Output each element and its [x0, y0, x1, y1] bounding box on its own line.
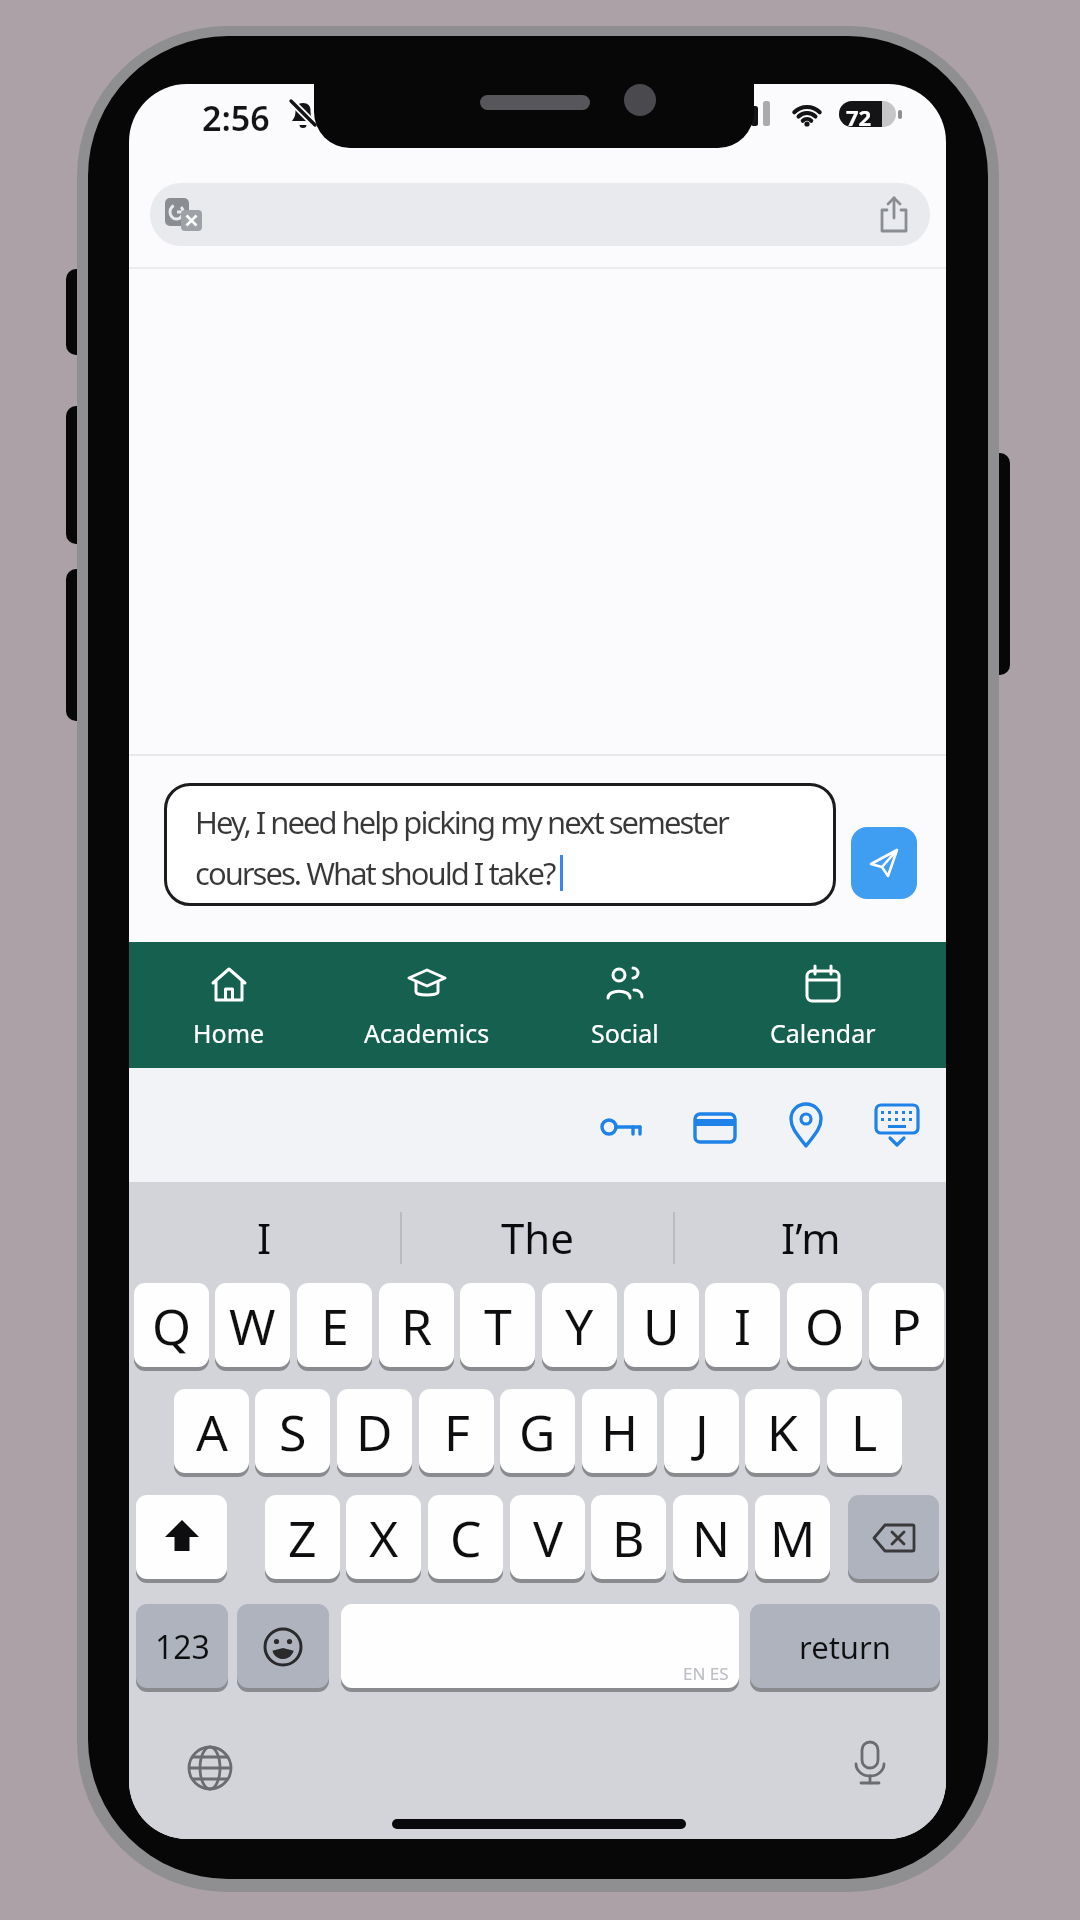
button[interactable]: Academics	[328, 942, 526, 1068]
button[interactable]: Z	[265, 1495, 340, 1580]
staticText: D	[356, 1398, 393, 1466]
button[interactable]: Hey, I need help picking my next semeste…	[164, 783, 836, 906]
button[interactable]: P	[869, 1283, 944, 1368]
staticText: Academics	[364, 1016, 490, 1050]
staticText: I’m	[781, 1209, 841, 1266]
button[interactable]: M	[755, 1495, 830, 1580]
button[interactable]	[787, 1102, 825, 1150]
staticText: L	[851, 1398, 878, 1466]
staticText: K	[767, 1398, 798, 1466]
button[interactable]: O	[787, 1283, 862, 1368]
button[interactable]	[846, 1740, 894, 1788]
button[interactable]: H	[582, 1389, 657, 1474]
staticText: Z	[288, 1504, 317, 1572]
button[interactable]: E	[297, 1283, 372, 1368]
staticText: S	[279, 1398, 307, 1466]
staticText: 72	[846, 102, 872, 129]
button[interactable]: J	[664, 1389, 739, 1474]
button[interactable]	[600, 1106, 644, 1148]
staticText: J	[695, 1398, 709, 1466]
staticText: 2:56	[202, 95, 270, 141]
staticText: 123	[155, 1625, 210, 1669]
button[interactable]: R	[379, 1283, 454, 1368]
button[interactable]: I’m	[675, 1195, 946, 1280]
button[interactable]: K	[745, 1389, 820, 1474]
staticText: A	[196, 1398, 228, 1466]
button[interactable]: S	[255, 1389, 330, 1474]
staticText: courses. What should I take?	[195, 852, 555, 894]
staticText: EN ES	[683, 1662, 729, 1685]
staticText: N	[692, 1504, 730, 1572]
staticText: H	[601, 1398, 639, 1466]
button[interactable]: Q	[134, 1283, 209, 1368]
button[interactable]: V	[510, 1495, 585, 1580]
staticText: R	[401, 1292, 433, 1360]
button[interactable]	[877, 196, 911, 234]
button[interactable]: Y	[542, 1283, 617, 1368]
button[interactable]	[237, 1604, 329, 1689]
button[interactable]: return	[750, 1604, 940, 1689]
staticText: W	[229, 1292, 276, 1360]
staticText: U	[643, 1292, 680, 1360]
staticText: Calendar	[770, 1016, 876, 1050]
button[interactable]	[694, 1106, 736, 1148]
staticText: Social	[591, 1016, 659, 1050]
button[interactable]: I	[705, 1283, 780, 1368]
button[interactable]: D	[337, 1389, 412, 1474]
button[interactable]	[848, 1495, 939, 1580]
staticText: M	[770, 1504, 816, 1572]
button[interactable]: B	[591, 1495, 666, 1580]
button[interactable]: 123	[136, 1604, 228, 1689]
button[interactable]	[186, 1744, 234, 1792]
button[interactable]: Calendar	[724, 942, 922, 1068]
staticText: E	[321, 1292, 349, 1360]
staticText: return	[799, 1626, 891, 1668]
staticText: G	[519, 1398, 556, 1466]
staticText: Q	[152, 1292, 192, 1360]
button[interactable]: N	[673, 1495, 748, 1580]
staticText: V	[533, 1504, 563, 1572]
staticText: Home	[193, 1016, 265, 1050]
staticText: C	[450, 1504, 482, 1572]
button[interactable]: T	[460, 1283, 535, 1368]
button[interactable]	[851, 827, 917, 899]
button[interactable]: The	[402, 1195, 673, 1280]
staticText: The	[501, 1209, 574, 1266]
staticText: T	[484, 1292, 512, 1360]
staticText: I	[257, 1209, 272, 1266]
button[interactable]: X	[346, 1495, 421, 1580]
button[interactable]: A	[174, 1389, 249, 1474]
button[interactable]: C	[428, 1495, 503, 1580]
staticText: P	[891, 1292, 922, 1360]
button[interactable]: Social	[526, 942, 724, 1068]
button[interactable]	[875, 1104, 919, 1150]
button[interactable]: F	[419, 1389, 494, 1474]
button[interactable]: Home	[129, 942, 328, 1068]
button[interactable]: W	[215, 1283, 290, 1368]
staticText: I	[734, 1292, 751, 1360]
staticText: O	[805, 1292, 845, 1360]
staticText: B	[612, 1504, 645, 1572]
staticText: X	[369, 1504, 399, 1572]
button[interactable]: EN ES	[341, 1604, 739, 1689]
button[interactable]: U	[624, 1283, 699, 1368]
staticText: Hey, I need help picking my next semeste…	[195, 801, 728, 843]
staticText: F	[444, 1398, 470, 1466]
button[interactable]: L	[827, 1389, 902, 1474]
button[interactable]: I	[129, 1195, 400, 1280]
staticText: Y	[565, 1292, 594, 1360]
button[interactable]: G	[500, 1389, 575, 1474]
button[interactable]	[136, 1495, 227, 1580]
